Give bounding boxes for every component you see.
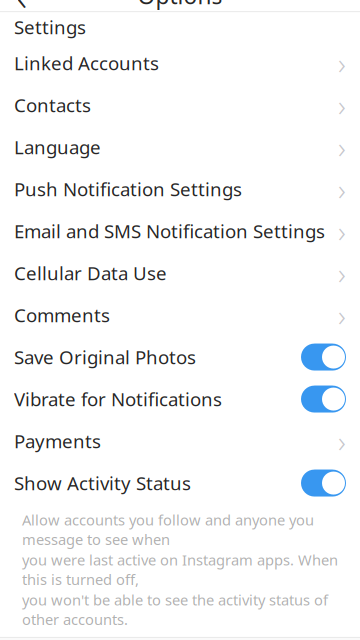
button[interactable]: Vibrate for Notifications (0, 378, 360, 420)
staticText: Language (14, 135, 101, 159)
staticText: › (338, 128, 346, 167)
staticText: Contacts (14, 93, 91, 117)
staticText: Push Notification Settings (14, 177, 242, 201)
staticText: you were last active on Instagram apps. … (22, 550, 338, 589)
button[interactable]: Push Notification Settings (0, 168, 360, 210)
staticText: you won't be able to see the activity st… (22, 590, 328, 629)
button[interactable]: Save Original Photos (0, 336, 360, 378)
staticText: ‹ (16, 0, 27, 22)
staticText: › (338, 296, 346, 335)
button[interactable]: Payments (0, 420, 360, 462)
staticText: Payments (14, 429, 101, 453)
button[interactable]: Cellular Data Use (0, 252, 360, 294)
staticText: Settings (14, 15, 86, 39)
button[interactable]: Linked Accounts (0, 42, 360, 84)
staticText: Cellular Data Use (14, 261, 167, 285)
staticText: › (338, 44, 346, 83)
staticText: Allow accounts you follow and anyone you… (22, 510, 314, 549)
staticText: Vibrate for Notifications (14, 387, 222, 411)
staticText: Options (137, 0, 222, 10)
button[interactable]: Email and SMS Notification Settings (0, 210, 360, 252)
staticText: › (338, 86, 346, 125)
button[interactable]: Contacts (0, 84, 360, 126)
button[interactable]: Back (0, 0, 44, 11)
button[interactable]: Comments (0, 294, 360, 336)
button[interactable]: Language (0, 126, 360, 168)
staticText: › (338, 254, 346, 293)
staticText: › (338, 212, 346, 251)
staticText: Comments (14, 303, 110, 327)
staticText: Show Activity Status (14, 471, 191, 495)
staticText: Email and SMS Notification Settings (14, 219, 325, 243)
staticText: › (338, 170, 346, 209)
staticText: Linked Accounts (14, 51, 159, 75)
staticText: Save Original Photos (14, 345, 196, 369)
button[interactable]: Show Activity Status (0, 462, 360, 504)
staticText: › (338, 422, 346, 461)
